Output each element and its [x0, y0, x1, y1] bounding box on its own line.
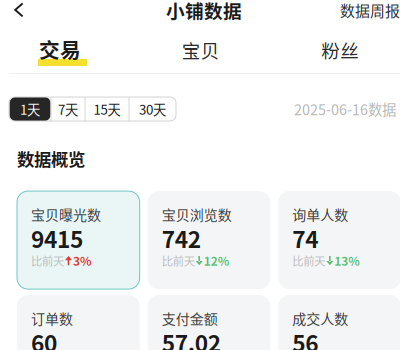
staticText: 15天 — [93, 99, 120, 119]
staticText: 交易 — [39, 34, 81, 64]
staticText: 12% — [204, 252, 230, 269]
staticText: 74 — [292, 222, 318, 254]
button[interactable]: 数据周报 — [330, 0, 400, 24]
staticText: 1天 — [20, 99, 40, 119]
staticText: 比前天 — [162, 252, 195, 269]
staticText: 742 — [162, 222, 201, 254]
staticText: 数据概览 — [17, 146, 85, 171]
staticText: 成交人数 — [292, 308, 348, 328]
button[interactable]: 询单人数 — [278, 191, 400, 289]
staticText: 57.02 — [162, 326, 221, 350]
staticText: 宝贝曝光数 — [31, 204, 101, 224]
button[interactable]: 15天 — [85, 97, 128, 121]
button[interactable]: 粉丝 — [270, 36, 400, 64]
button[interactable]: 宝贝曝光数 — [17, 191, 140, 289]
staticText: 56 — [292, 326, 318, 350]
staticText: 宝贝 — [182, 37, 220, 63]
button[interactable]: 宝贝 — [131, 36, 270, 64]
staticText: 9415 — [31, 222, 83, 254]
staticText: 粉丝 — [321, 37, 359, 63]
staticText: 宝贝浏览数 — [162, 204, 232, 224]
button[interactable]: 7天 — [51, 97, 84, 121]
staticText: 60 — [31, 326, 57, 350]
button[interactable]: 宝贝浏览数 — [148, 191, 270, 289]
button[interactable]: 支付金额 — [148, 295, 270, 350]
staticText: 2025-06-16数据 — [294, 99, 396, 119]
button[interactable]: 交易 — [0, 36, 131, 64]
staticText: 订单数 — [31, 308, 73, 328]
staticText: 3% — [73, 252, 92, 269]
button[interactable]: 成交人数 — [278, 295, 400, 350]
button[interactable]: 订单数 — [17, 295, 140, 350]
staticText: 7天 — [58, 99, 78, 119]
staticText: 比前天 — [292, 252, 325, 269]
staticText: 比前天 — [31, 252, 64, 269]
staticText: 13% — [334, 252, 360, 269]
button[interactable]: 1天 — [9, 97, 50, 121]
staticText: 询单人数 — [292, 204, 348, 224]
button[interactable]: 返回 — [9, 0, 34, 20]
staticText: 小铺数据 — [166, 0, 242, 23]
staticText: 数据周报 — [340, 0, 400, 21]
staticText: 支付金额 — [162, 308, 218, 328]
button[interactable]: 30天 — [129, 97, 175, 121]
staticText: 30天 — [139, 99, 166, 119]
